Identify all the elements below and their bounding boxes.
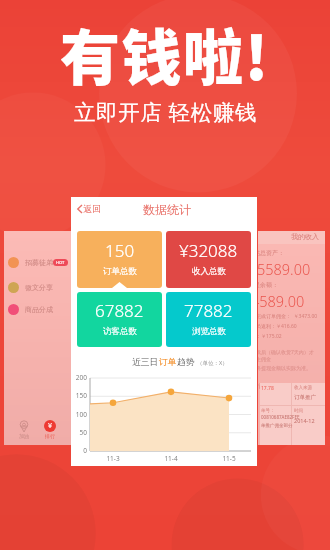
staticText: 0 [71, 446, 87, 455]
staticText: 100 [71, 410, 87, 419]
staticText: 返回 [83, 203, 101, 214]
staticText: 200 [71, 373, 87, 382]
staticText: 67882 [95, 299, 144, 322]
staticText: 11-4 [161, 454, 181, 463]
staticText: 已完成订单佣金： ￥3473.00 [258, 313, 318, 320]
staticText: ：￥175.02 [258, 333, 282, 340]
staticText: 最终提现金额以实际为准。 [258, 365, 311, 371]
staticText: 我的收入 [291, 232, 319, 241]
staticText: ¥32088 [179, 239, 238, 262]
staticText: 150 [105, 239, 135, 262]
staticText: 立即开店 轻松赚钱 [74, 97, 257, 126]
staticText: 150 [71, 391, 87, 400]
staticText: 订单 [159, 357, 177, 368]
staticText: 商品分成 [25, 305, 53, 314]
button[interactable]: 67882 [77, 292, 162, 347]
staticText: 数据统计 [143, 202, 191, 217]
button[interactable]: 我的收入 [258, 231, 325, 445]
staticText: 趋势 [177, 357, 195, 368]
staticText: （单位：X） [197, 359, 228, 367]
staticText: 招募徒弟 [25, 258, 53, 267]
button[interactable]: 招募徒弟 [4, 253, 71, 271]
staticText: 订单总数 [103, 266, 137, 277]
button[interactable]: 返回 [77, 203, 101, 214]
staticText: 访客总数 [103, 326, 137, 337]
staticText: 77882 [184, 299, 233, 322]
staticText: 会员返利：￥416.60 [258, 323, 297, 330]
staticText: 2014-12 [294, 417, 315, 424]
staticText: 微文分享 [25, 283, 53, 292]
staticText: 排行 [45, 433, 55, 439]
staticText: 11-5 [219, 454, 239, 463]
staticText: 单推广佣金部分 [261, 423, 293, 429]
button[interactable]: ¥32088 [166, 231, 251, 288]
staticText: 00810687AE82FEE [261, 414, 300, 420]
staticText: 近三日 [132, 357, 159, 368]
staticText: 17.78 [261, 385, 274, 392]
button[interactable]: 微文分享 [4, 278, 71, 296]
staticText: 完成后（确认收货7天内）才产生佣金 [258, 349, 318, 363]
button[interactable]: 77882 [166, 292, 251, 347]
staticText: HOT [56, 260, 65, 265]
staticText: 预估总资产： [258, 249, 284, 257]
staticText: 时间 [294, 408, 303, 414]
staticText: 收入总数 [192, 266, 226, 277]
staticText: 有钱啦! [60, 10, 270, 97]
button[interactable]: 150 [77, 231, 162, 288]
button[interactable]: 商品分成 [4, 300, 71, 318]
staticText: 浏览总数 [192, 326, 226, 337]
staticText: 11-3 [103, 454, 123, 463]
button[interactable]: 招募徒弟 [4, 231, 71, 445]
button[interactable]: 排行 [44, 420, 56, 439]
button[interactable]: 加油 [19, 420, 29, 439]
staticText: 单号： [261, 408, 275, 414]
staticText: 收入来源 [294, 385, 312, 391]
staticText: 5589.00 [258, 259, 311, 279]
staticText: 订单推广 [294, 394, 316, 401]
staticText: 加油 [19, 433, 29, 439]
staticText: 详情： [258, 382, 269, 390]
staticText: 可提余额： [258, 281, 278, 289]
staticText: 4589.00 [258, 291, 305, 311]
staticText: ¥ [48, 421, 53, 431]
staticText: 50 [71, 428, 87, 437]
